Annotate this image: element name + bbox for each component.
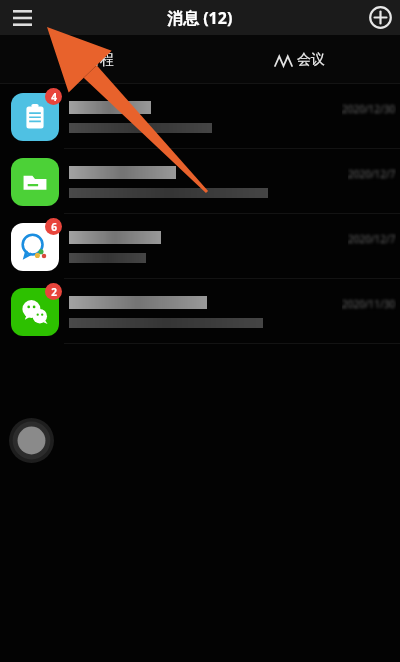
staticText: 2020/12/30 [342,102,396,116]
staticText: 4 [51,90,57,104]
staticText: 6 [51,220,57,234]
staticText: 会议 [297,51,325,69]
staticText: 2 [51,285,57,299]
staticText: 消息 (12) [167,7,233,29]
button[interactable]: 2 [0,279,400,344]
staticText: 2020/12/7 [348,232,396,246]
staticText: 2020/12/7 [348,167,396,181]
staticText: 日程 [86,51,114,69]
button[interactable]: 会议 [200,35,400,84]
button[interactable]: Floating button [9,418,54,463]
button[interactable]: 日程 [0,35,200,84]
button[interactable]: Add [360,0,400,35]
button[interactable]: 6 [0,214,400,279]
staticText: 2020/11/30 [342,297,396,311]
button[interactable]: 2020/12/7 [0,149,400,214]
button[interactable]: Menu [0,0,44,35]
button[interactable]: 4 [0,84,400,149]
